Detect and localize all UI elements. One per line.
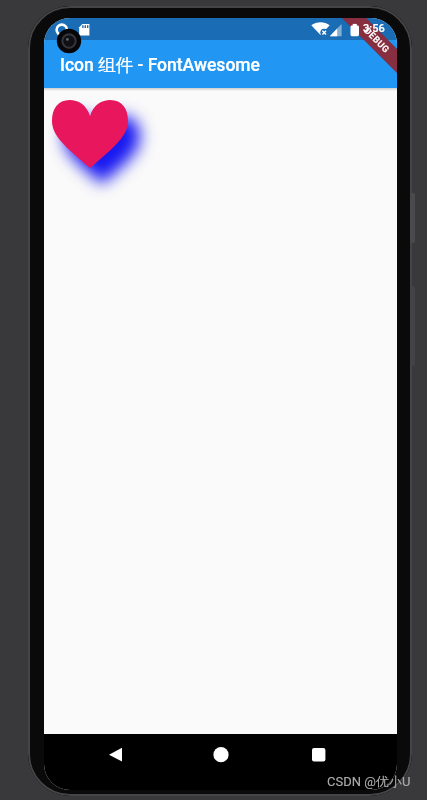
button[interactable] [99,734,144,775]
staticText: 3:56 [363,22,385,35]
staticText: CSDN @优小U [327,773,411,789]
button[interactable]: Icon 组件 - FontAwesome [44,40,397,88]
staticText: DEBUG [362,26,392,56]
button[interactable] [52,100,128,168]
button[interactable] [296,734,341,775]
button[interactable] [199,734,244,775]
staticText: Icon 组件 - FontAwesome [60,54,260,76]
